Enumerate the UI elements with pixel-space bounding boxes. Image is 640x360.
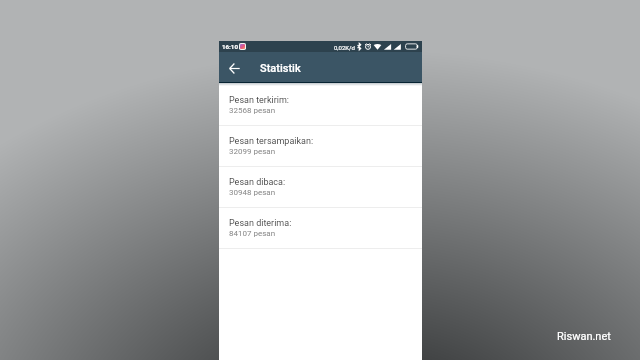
staticText: Riswan.net — [557, 330, 611, 343]
staticText: Pesan dibaca: — [229, 177, 286, 188]
staticText: 84107 pesan — [229, 229, 276, 238]
staticText: Pesan diterima: — [229, 218, 292, 229]
button[interactable]: Pesan tersampaikan: — [219, 127, 422, 168]
staticText: Statistik — [260, 62, 301, 75]
button[interactable]: Pesan diterima: — [219, 209, 422, 250]
button[interactable]: Back — [224, 58, 245, 79]
staticText: 16:10 — [222, 43, 238, 50]
staticText: 32099 pesan — [229, 147, 276, 156]
staticText: Pesan terkirim: — [229, 95, 289, 106]
staticText: 32568 pesan — [229, 106, 276, 115]
staticText: 0,02K/d — [334, 44, 355, 51]
button[interactable]: Pesan dibaca: — [219, 168, 422, 209]
button[interactable]: Pesan terkirim: — [219, 86, 422, 127]
staticText: Pesan tersampaikan: — [229, 136, 314, 147]
staticText: 30948 pesan — [229, 188, 276, 197]
